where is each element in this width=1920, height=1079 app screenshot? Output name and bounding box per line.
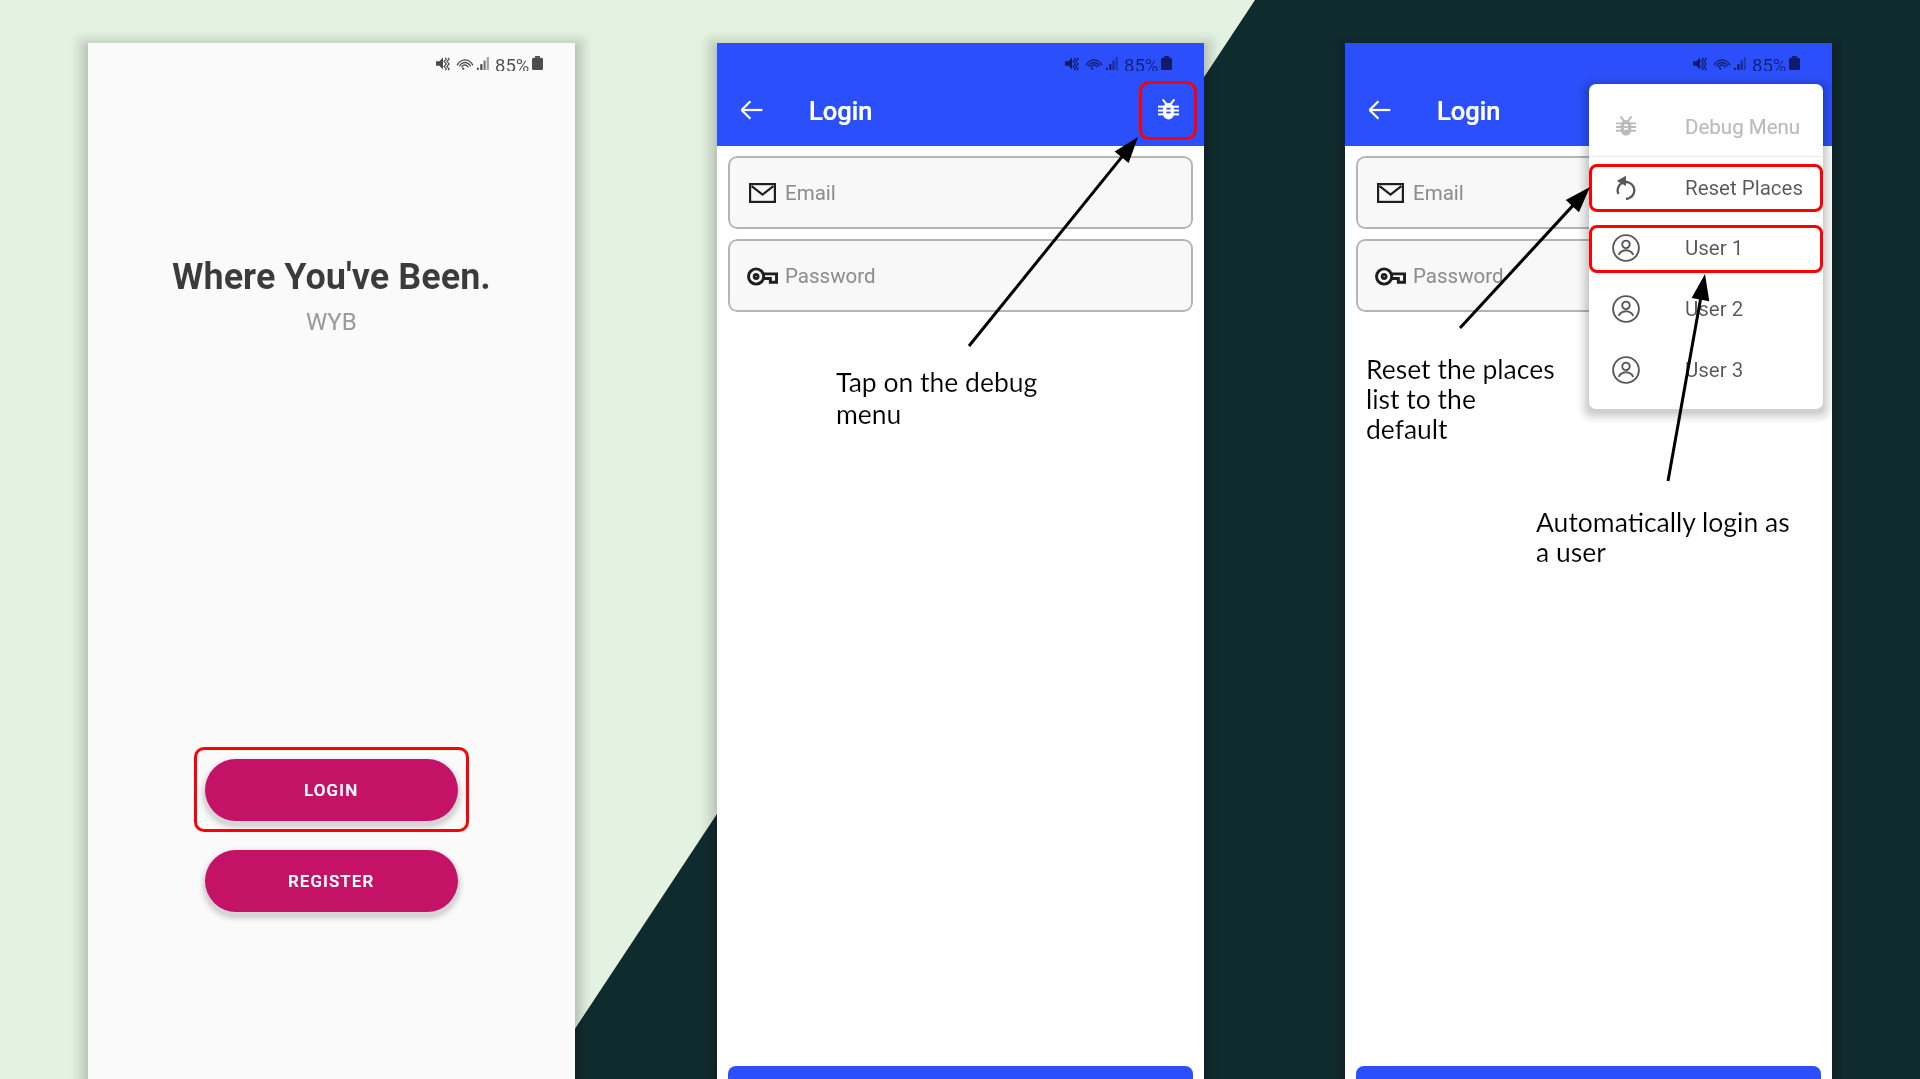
staticText: WYB — [306, 308, 357, 336]
button[interactable]: User 3 — [1589, 340, 1823, 400]
staticText: Email — [1413, 181, 1464, 205]
staticText: Where You've Been. — [172, 256, 491, 298]
staticText: User 2 — [1685, 297, 1744, 321]
staticText: 85% — [1124, 55, 1159, 71]
button[interactable]: User 1 — [1589, 218, 1823, 278]
button[interactable]: REGISTER — [205, 850, 458, 912]
button[interactable]: User 2 — [1589, 279, 1823, 339]
staticText: Login — [1437, 96, 1501, 126]
button[interactable]: Password — [728, 239, 1193, 312]
staticText: REGISTER — [288, 871, 375, 891]
staticText: 85% — [495, 55, 530, 71]
button[interactable]: Password — [1356, 239, 1821, 312]
button[interactable]: Debug Menu — [1589, 97, 1823, 157]
staticText: Reset Places — [1685, 176, 1803, 200]
button[interactable]: Sign in — [728, 1066, 1193, 1079]
button[interactable]: Email — [1356, 156, 1821, 229]
button[interactable]: Reset Places — [1589, 158, 1823, 218]
staticText: Password — [785, 264, 876, 288]
staticText: Debug Menu — [1685, 115, 1801, 139]
staticText: Tap on the debug menu — [836, 366, 1038, 430]
staticText: LOGIN — [304, 780, 359, 800]
staticText: Email — [785, 181, 836, 205]
staticText: Password — [1413, 264, 1504, 288]
staticText: User 3 — [1685, 358, 1744, 382]
button[interactable]: LOGIN — [205, 759, 458, 821]
staticText: Automatically login as a user — [1536, 506, 1790, 567]
staticText: Reset the places list to the default — [1366, 353, 1555, 444]
staticText: User 1 — [1685, 236, 1744, 260]
button[interactable]: Debug menu — [1142, 85, 1194, 137]
button[interactable]: Email — [728, 156, 1193, 229]
staticText: Login — [809, 96, 873, 126]
button[interactable]: Back — [726, 84, 778, 136]
button[interactable]: Back — [1354, 84, 1406, 136]
button[interactable]: Sign in — [1356, 1066, 1821, 1079]
staticText: 85% — [1752, 55, 1787, 71]
